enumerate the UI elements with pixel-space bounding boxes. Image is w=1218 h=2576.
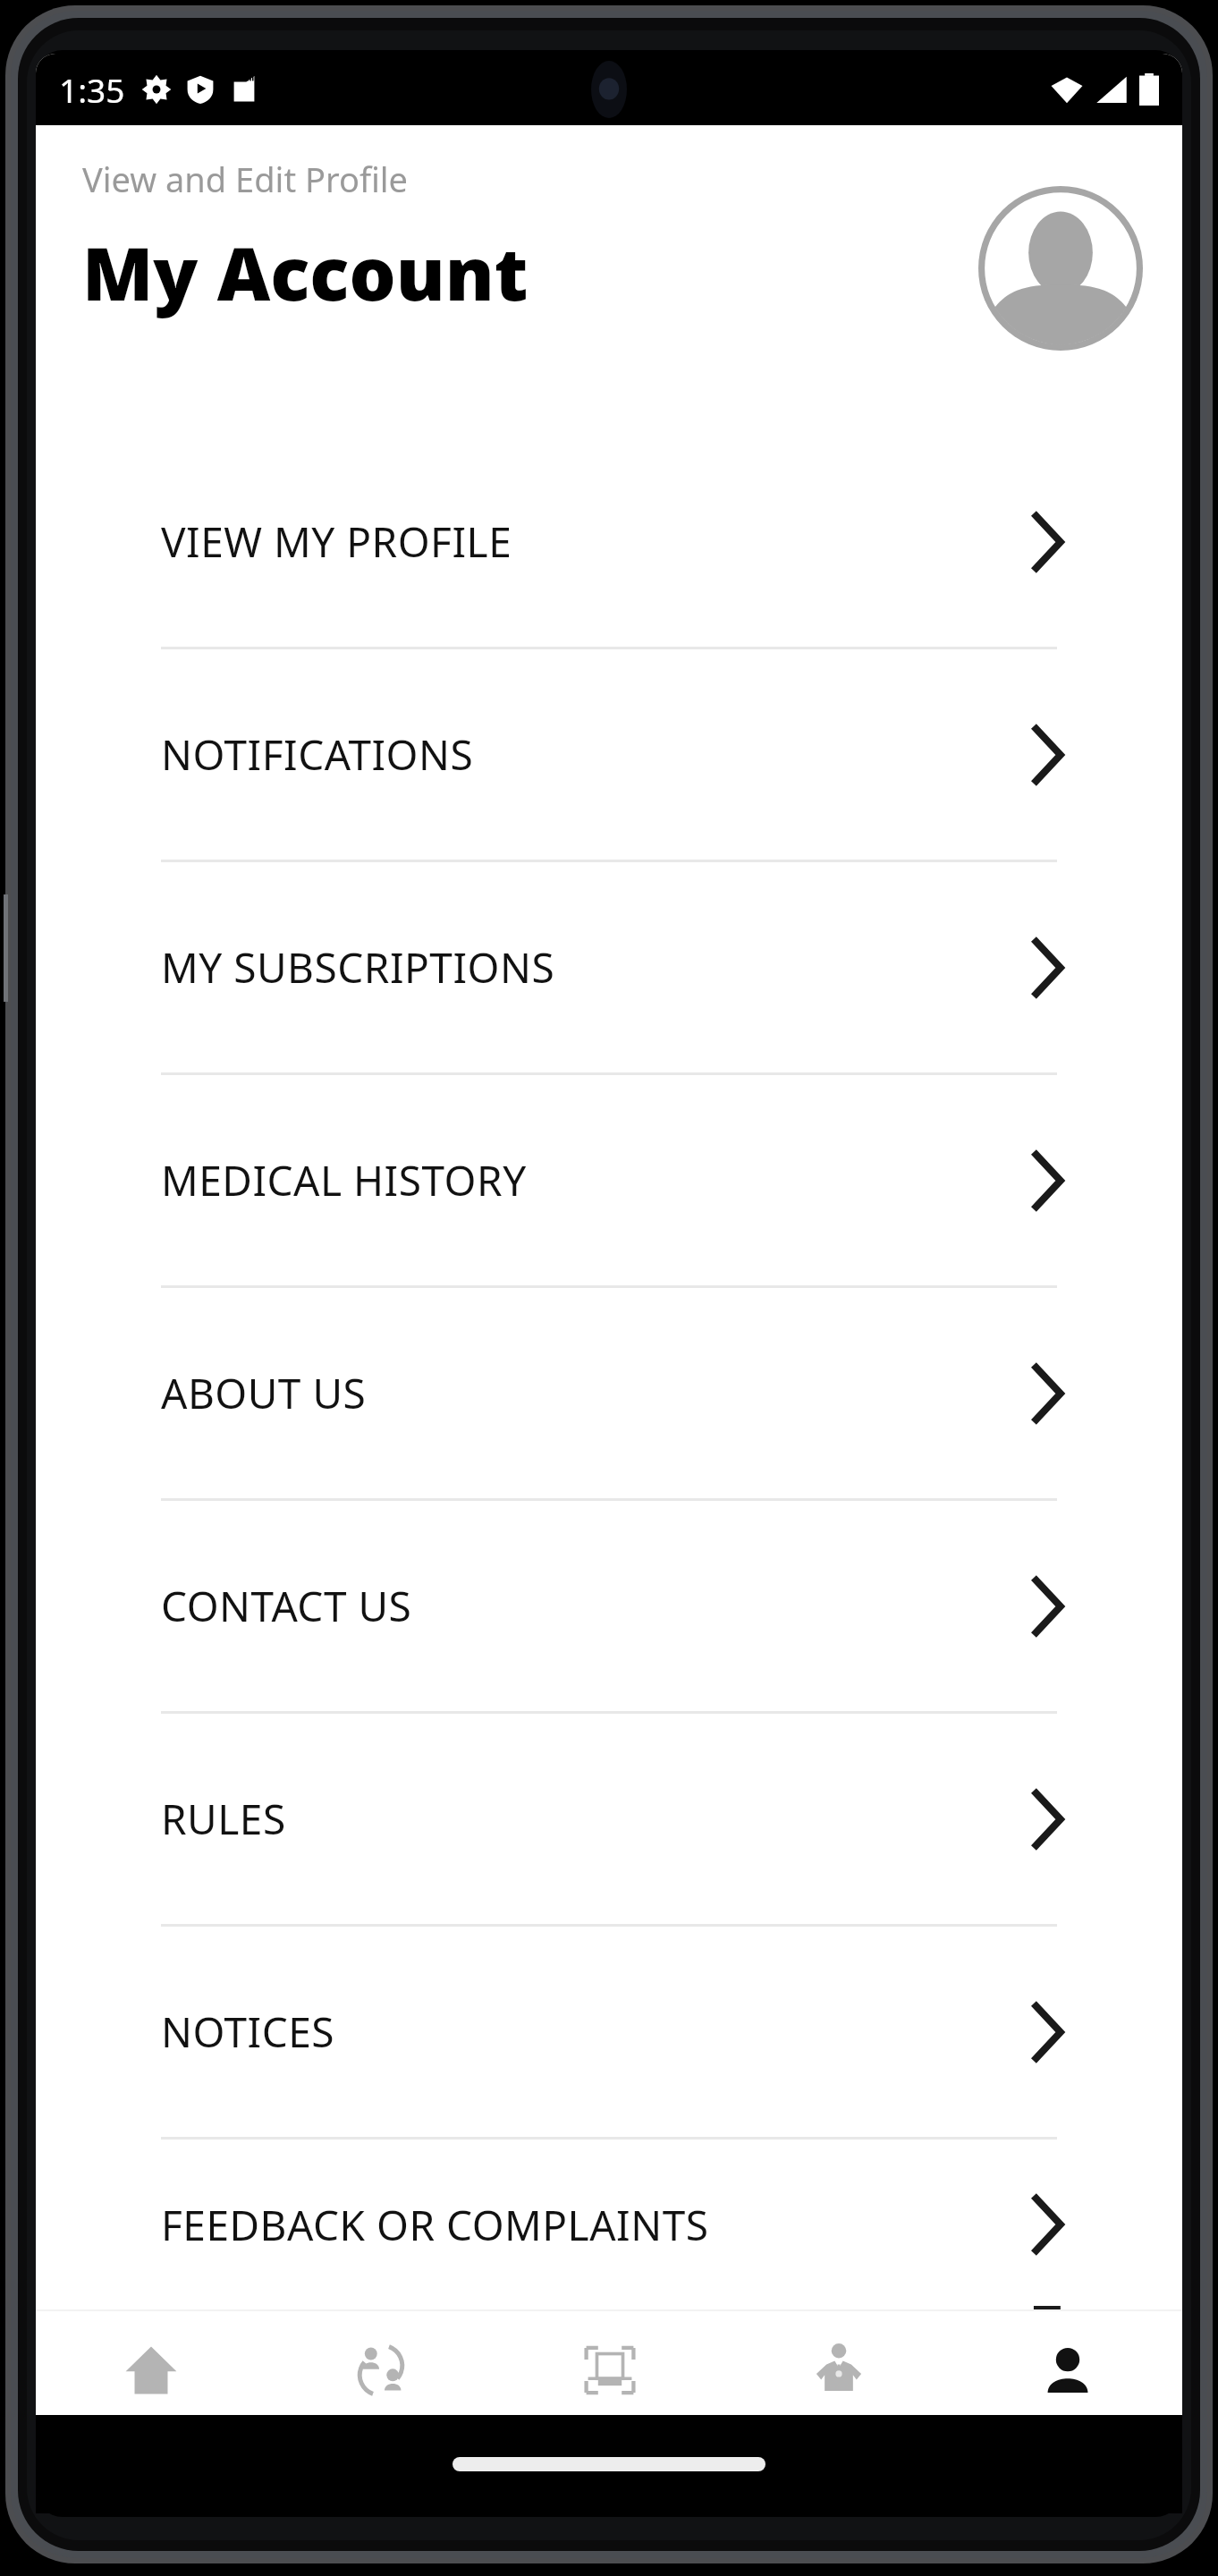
- button[interactable]: MEDICAL HISTORY: [36, 1075, 1182, 1285]
- staticText: NOTIFICATIONS: [161, 726, 1027, 783]
- button[interactable]: MY SUBSCRIPTIONS: [36, 862, 1182, 1072]
- button[interactable]: Community: [266, 2311, 495, 2487]
- staticText: NOTICES: [161, 2004, 1027, 2060]
- staticText: 1:35: [59, 67, 125, 112]
- button[interactable]: FEEDBACK OR COMPLAINTS: [36, 2140, 1182, 2309]
- staticText: My Account: [82, 222, 529, 322]
- button[interactable]: NOTICES: [36, 1927, 1182, 2137]
- staticText: ABOUT US: [161, 1365, 1027, 1421]
- staticText: FEEDBACK OR COMPLAINTS: [161, 2197, 1027, 2253]
- button[interactable]: VIEW MY PROFILE: [36, 436, 1182, 647]
- button[interactable]: CONTACT US: [36, 1501, 1182, 1711]
- button[interactable]: Scan QR: [495, 2311, 724, 2487]
- button[interactable]: Profile photo: [978, 186, 1143, 351]
- staticText: MEDICAL HISTORY: [161, 1152, 1027, 1208]
- staticText: RULES: [161, 1791, 1027, 1847]
- button[interactable]: NOTIFICATIONS: [36, 649, 1182, 860]
- button[interactable]: PT: [724, 2311, 953, 2487]
- button[interactable]: Home: [36, 2311, 266, 2487]
- button[interactable]: ABOUT US: [36, 1288, 1182, 1498]
- staticText: VIEW MY PROFILE: [161, 513, 1027, 570]
- staticText: CONTACT US: [161, 1578, 1027, 1634]
- button[interactable]: My Account: [953, 2311, 1182, 2487]
- button[interactable]: RULES: [36, 1714, 1182, 1924]
- staticText: MY SUBSCRIPTIONS: [161, 939, 1027, 996]
- staticText: View and Edit Profile: [82, 156, 409, 202]
